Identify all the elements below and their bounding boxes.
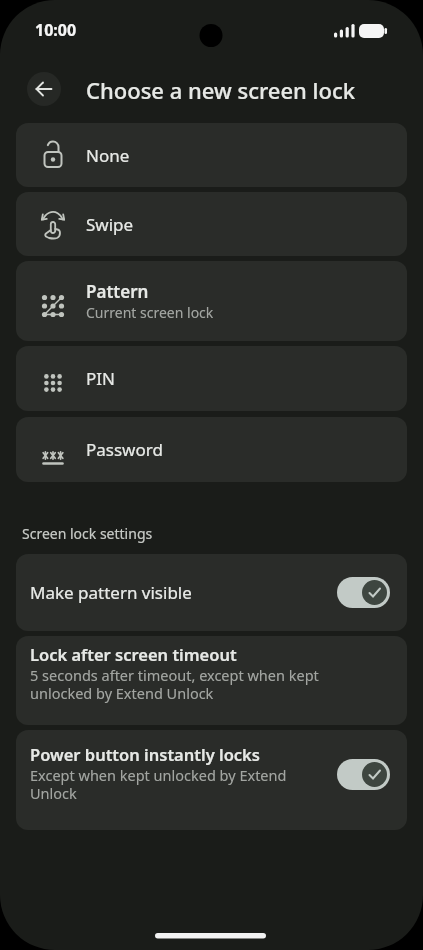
staticText: Lock after screen timeout <box>30 643 237 665</box>
button[interactable]: Pattern <box>16 261 407 341</box>
staticText: Current screen lock <box>86 303 214 322</box>
staticText: PIN <box>86 367 115 390</box>
button[interactable]: Make pattern visible <box>16 554 407 631</box>
button[interactable] <box>337 577 390 608</box>
staticText: Swipe <box>86 213 134 236</box>
button[interactable]: Swipe <box>16 192 407 256</box>
staticText: Except when kept unlocked by Extend Unlo… <box>30 765 287 803</box>
staticText: None <box>86 144 130 167</box>
staticText: Power button instantly locks <box>30 743 260 765</box>
staticText: Choose a new screen lock <box>86 75 356 105</box>
button[interactable]: Lock after screen timeout <box>16 636 407 725</box>
button[interactable] <box>337 759 390 790</box>
staticText: Make pattern visible <box>30 581 192 604</box>
button[interactable]: None <box>16 123 407 187</box>
staticText: Password <box>86 438 163 461</box>
staticText: Screen lock settings <box>22 524 153 543</box>
staticText: 10:00 <box>35 19 77 41</box>
button[interactable]: Password <box>16 417 407 482</box>
button[interactable]: Power button instantly locks <box>16 730 407 830</box>
staticText: Pattern <box>86 280 149 303</box>
staticText: 5 seconds after timeout, except when kep… <box>30 665 319 703</box>
button[interactable]: PIN <box>16 346 407 411</box>
button[interactable] <box>27 72 61 106</box>
